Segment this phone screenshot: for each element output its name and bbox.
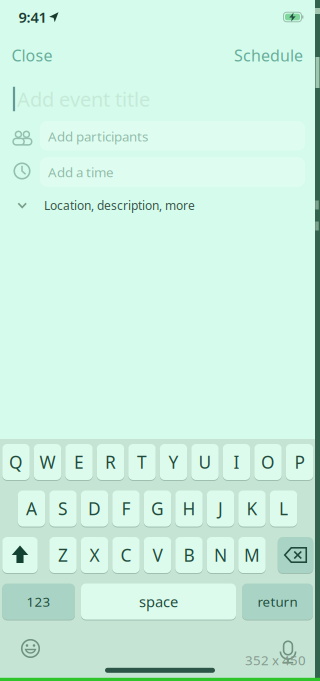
button[interactable]: F bbox=[112, 490, 140, 526]
button[interactable]: Q bbox=[2, 444, 30, 480]
button[interactable]: D bbox=[81, 490, 108, 526]
button[interactable]: G bbox=[144, 490, 171, 526]
staticText: V bbox=[152, 543, 162, 566]
button[interactable]: X bbox=[81, 537, 108, 573]
staticText: I bbox=[233, 450, 239, 473]
staticText: Add event title bbox=[17, 86, 150, 112]
staticText: C bbox=[120, 543, 131, 566]
button[interactable]: U bbox=[191, 444, 219, 480]
button[interactable]: A bbox=[18, 490, 45, 526]
button[interactable]: S bbox=[49, 490, 77, 526]
button[interactable]: Delete bbox=[278, 537, 313, 573]
button[interactable]: Location, description, more bbox=[0, 190, 320, 220]
staticText: Add participants bbox=[48, 127, 148, 145]
staticText: Close bbox=[11, 45, 52, 66]
staticText: B bbox=[183, 543, 194, 566]
button[interactable]: E bbox=[65, 444, 93, 480]
staticText: K bbox=[246, 497, 257, 520]
button[interactable]: R bbox=[97, 444, 124, 480]
button[interactable]: W bbox=[34, 444, 61, 480]
staticText: Location, description, more bbox=[44, 197, 195, 213]
button[interactable]: Add a time bbox=[0, 157, 320, 187]
button[interactable]: I bbox=[223, 444, 250, 480]
staticText: Schedule bbox=[234, 45, 303, 66]
staticText: D bbox=[88, 497, 101, 520]
staticText: Q bbox=[9, 450, 23, 473]
button[interactable]: N bbox=[207, 537, 234, 573]
staticText: R bbox=[105, 450, 116, 473]
staticText: H bbox=[182, 497, 195, 520]
button[interactable]: Close bbox=[11, 45, 52, 66]
button[interactable]: Z bbox=[49, 537, 77, 573]
staticText: return bbox=[257, 593, 297, 610]
staticText: O bbox=[261, 450, 275, 473]
staticText: 352 x 450 bbox=[245, 651, 306, 669]
staticText: N bbox=[214, 543, 227, 566]
staticText: L bbox=[279, 497, 288, 520]
button[interactable]: 123 bbox=[2, 583, 75, 619]
staticText: A bbox=[26, 497, 37, 520]
button[interactable]: H bbox=[175, 490, 203, 526]
staticText: Add a time bbox=[48, 163, 114, 181]
staticText: S bbox=[58, 497, 68, 520]
staticText: T bbox=[137, 450, 147, 473]
button[interactable]: J bbox=[207, 490, 234, 526]
button[interactable]: Schedule bbox=[234, 45, 303, 66]
staticText: J bbox=[218, 497, 223, 520]
staticText: P bbox=[294, 450, 304, 473]
button[interactable]: T bbox=[128, 444, 156, 480]
button[interactable]: M bbox=[238, 537, 266, 573]
button[interactable]: Emoji bbox=[19, 637, 41, 659]
staticText: F bbox=[121, 497, 130, 520]
button[interactable]: Dictate bbox=[277, 639, 299, 664]
staticText: Y bbox=[168, 450, 178, 473]
button[interactable]: return bbox=[242, 583, 313, 619]
staticText: U bbox=[198, 450, 211, 473]
staticText: G bbox=[151, 497, 164, 520]
staticText: 9:41 bbox=[18, 7, 46, 27]
button[interactable]: L bbox=[270, 490, 297, 526]
button[interactable]: V bbox=[144, 537, 171, 573]
staticText: W bbox=[39, 450, 55, 473]
staticText: Z bbox=[58, 543, 68, 566]
button[interactable]: B bbox=[175, 537, 203, 573]
staticText: X bbox=[89, 543, 99, 566]
button[interactable]: C bbox=[112, 537, 140, 573]
button[interactable]: space bbox=[81, 583, 236, 619]
button[interactable]: K bbox=[238, 490, 266, 526]
button[interactable]: Shift bbox=[2, 537, 38, 573]
staticText: 123 bbox=[27, 593, 51, 610]
staticText: E bbox=[74, 450, 84, 473]
button[interactable]: P bbox=[286, 444, 313, 480]
button[interactable]: Y bbox=[160, 444, 187, 480]
button[interactable]: O bbox=[254, 444, 282, 480]
staticText: M bbox=[244, 543, 260, 566]
button[interactable]: Add participants bbox=[0, 121, 320, 151]
staticText: space bbox=[139, 592, 178, 611]
